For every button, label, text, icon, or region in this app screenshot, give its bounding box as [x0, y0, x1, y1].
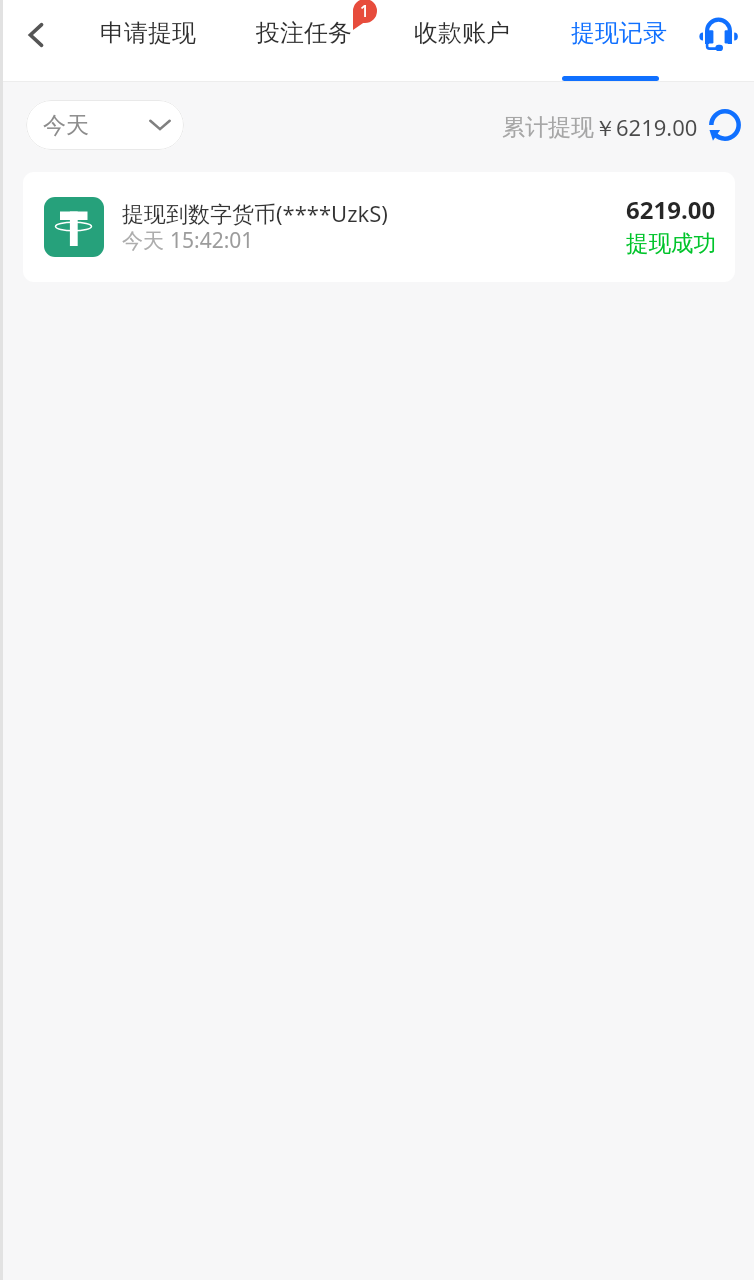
staticText: 提现到数字货币(****UzkS) — [122, 198, 388, 228]
staticText: 投注任务 — [256, 18, 352, 48]
staticText: 今天 — [43, 111, 89, 140]
button[interactable]: 投注任务 — [244, 0, 364, 81]
button[interactable]: Back — [10, 0, 62, 81]
staticText: 提现记录 — [571, 18, 667, 48]
staticText: 累计提现 — [502, 113, 594, 142]
staticText: 申请提现 — [100, 18, 196, 48]
button[interactable]: 提现到数字货币(****UzkS) — [23, 172, 735, 282]
button[interactable]: 收款账户 — [402, 0, 522, 81]
staticText: 6219.00 — [626, 193, 716, 226]
staticText: ￥6219.00 — [594, 112, 698, 142]
staticText: 提现成功 — [626, 229, 716, 257]
button[interactable]: 申请提现 — [88, 0, 208, 81]
staticText: 1 — [360, 0, 370, 22]
staticText: 15:42:01 — [170, 226, 254, 255]
button[interactable]: Customer service — [692, 0, 744, 81]
staticText: 收款账户 — [414, 18, 510, 48]
button[interactable]: 今天 — [26, 100, 184, 150]
button[interactable]: Refresh — [708, 108, 746, 146]
staticText: 今天 — [122, 228, 164, 254]
button[interactable]: 提现记录 — [559, 0, 679, 81]
